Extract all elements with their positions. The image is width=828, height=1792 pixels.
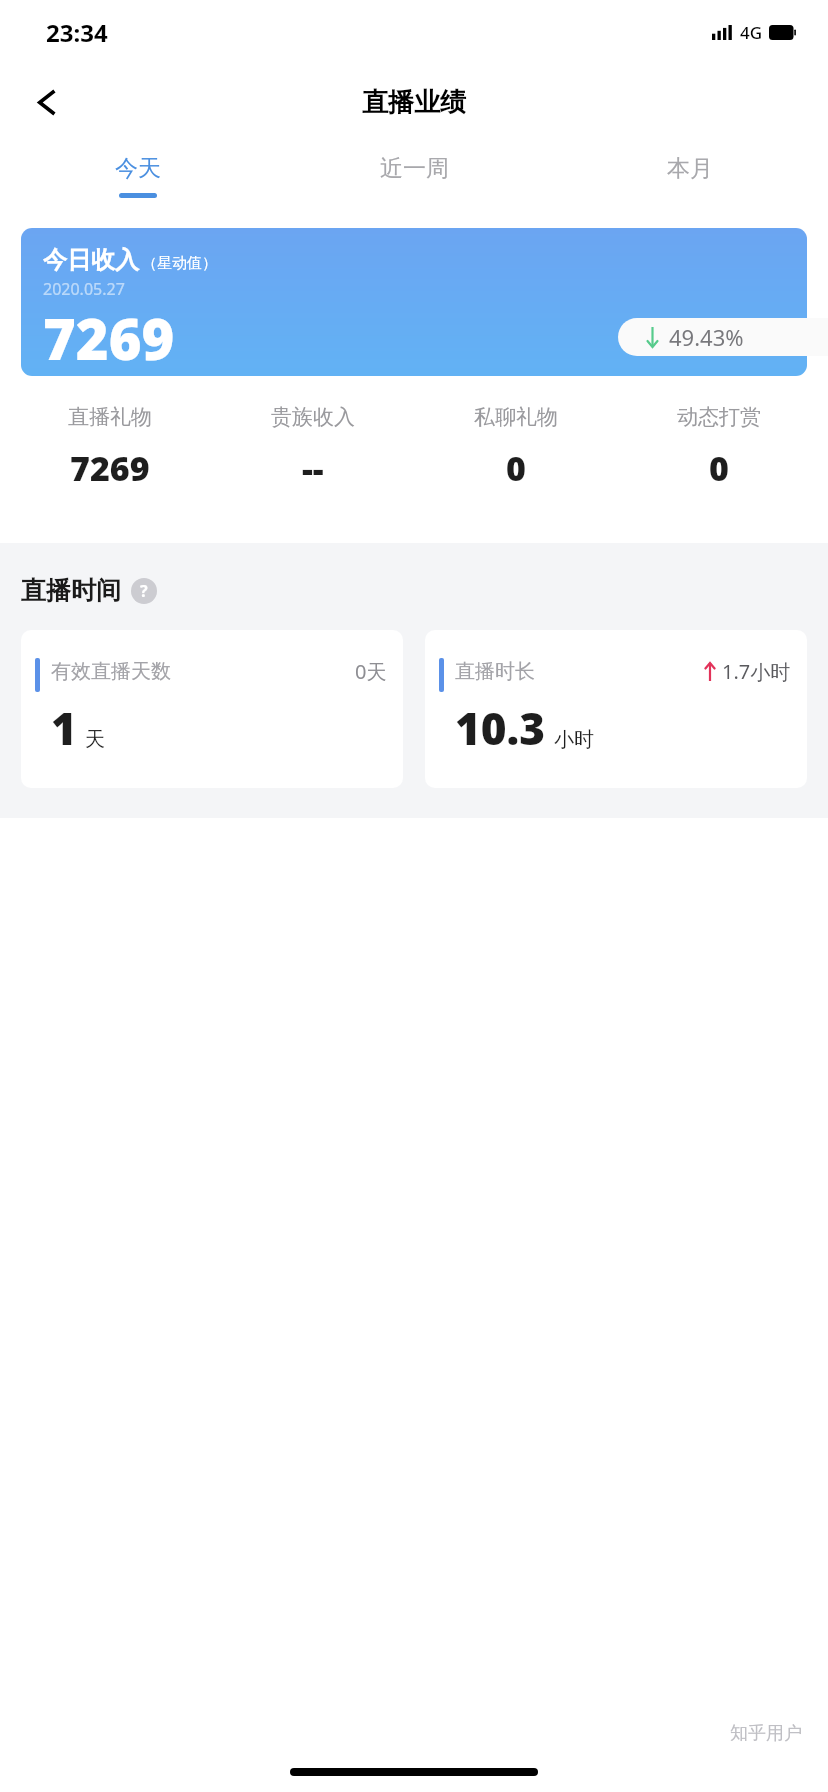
staticText: 有效直播天数 [51, 659, 171, 684]
staticText: 4G [740, 21, 763, 44]
staticText: 10.3 [455, 698, 546, 758]
button[interactable]: 有效直播天数 [21, 630, 403, 788]
button[interactable]: 本月 [552, 140, 828, 212]
staticText: 49.43% [669, 322, 744, 352]
staticText: 1.7小时 [722, 658, 791, 685]
staticText: 直播业绩 [362, 86, 466, 119]
staticText: 23:34 [46, 16, 108, 49]
button[interactable]: 私聊礼物 [414, 404, 617, 491]
staticText: 动态打赏 [677, 404, 761, 430]
button[interactable]: 直播礼物 [8, 404, 211, 491]
staticText: 天 [85, 727, 105, 752]
staticText: 知乎用户 [730, 1722, 802, 1745]
button[interactable]: 动态打赏 [617, 404, 820, 491]
button[interactable]: 近一周 [276, 140, 552, 212]
button[interactable]: 今日收入 [21, 228, 807, 376]
staticText: -- [302, 445, 324, 491]
staticText: 今天 [115, 154, 161, 183]
staticText: 小时 [554, 727, 594, 752]
staticText: 7269 [70, 445, 150, 491]
button[interactable]: 直播时长 [425, 630, 807, 788]
staticText: 1 [51, 698, 77, 758]
button[interactable]: 贵族收入 [211, 404, 414, 491]
staticText: 0 [709, 445, 729, 491]
staticText: 0天 [355, 658, 387, 685]
staticText: 直播时长 [455, 659, 535, 684]
staticText: 0 [506, 445, 526, 491]
staticText: 本月 [667, 154, 713, 183]
button[interactable]: 49.43% [618, 318, 828, 356]
staticText: 贵族收入 [271, 404, 355, 430]
staticText: 直播时间 [21, 575, 121, 606]
staticText: 私聊礼物 [474, 404, 558, 430]
staticText: ? [140, 580, 148, 602]
button[interactable]: Help [131, 578, 157, 604]
staticText: 7269 [43, 300, 175, 376]
button[interactable]: Back [18, 73, 76, 131]
button[interactable]: 今天 [0, 140, 276, 212]
staticText: 直播礼物 [68, 404, 152, 430]
staticText: 今日收入 [43, 245, 139, 275]
staticText: （星动值） [142, 254, 217, 273]
staticText: 近一周 [380, 154, 449, 183]
staticText: 2020.05.27 [43, 278, 125, 300]
